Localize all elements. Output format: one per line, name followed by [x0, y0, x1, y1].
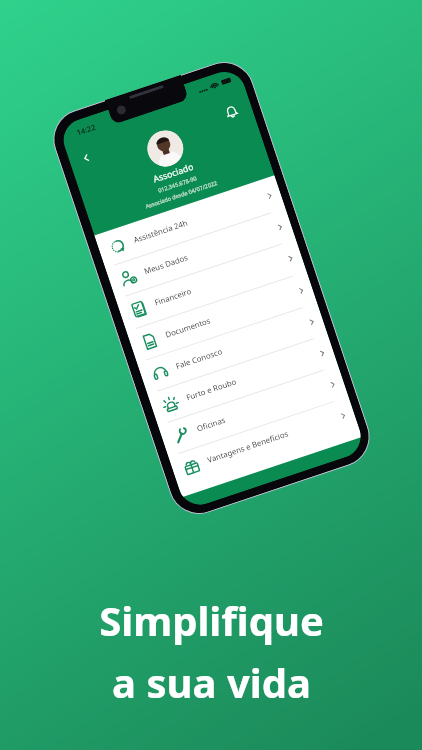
button[interactable]: Vantagens e Benefícios [168, 396, 359, 488]
staticText: 14:22 [75, 122, 97, 137]
button[interactable]: Fale Conosco [137, 302, 327, 394]
staticText: 012.345.678-90 [157, 174, 198, 195]
button[interactable]: Oficinas [158, 365, 348, 456]
staticText: Financeiro [153, 286, 194, 308]
staticText: Assistência 24h [132, 217, 190, 246]
staticText: Simplifique [99, 593, 324, 647]
staticText: a sua vida [112, 655, 311, 709]
button[interactable]: Notificações [222, 102, 241, 121]
staticText: Fale Conosco [174, 346, 224, 372]
button[interactable]: Financeiro [115, 239, 306, 330]
staticText: Furto e Roubo [185, 376, 238, 403]
button[interactable]: Voltar [79, 150, 94, 166]
staticText: Oficinas [195, 415, 227, 435]
staticText: Associado [152, 161, 195, 185]
button[interactable]: Furto e Roubo [147, 334, 338, 425]
button[interactable]: Documentos [126, 271, 317, 363]
staticText: Meus Dados [143, 252, 190, 277]
button[interactable]: Assistência 24h [95, 176, 285, 268]
staticText: Vantagens e Benefícios [206, 428, 290, 466]
staticText: Documentos [164, 315, 212, 341]
staticText: Associado desde 04/07/2022 [144, 179, 218, 210]
button[interactable]: Meus Dados [105, 207, 296, 299]
